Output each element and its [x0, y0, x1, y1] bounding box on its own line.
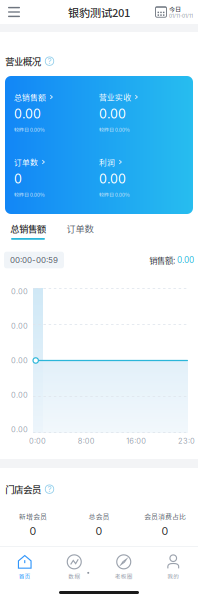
staticText: 数据	[68, 572, 80, 580]
staticText: 0	[161, 524, 168, 537]
staticText: 较昨日 0.00%	[14, 191, 45, 198]
staticText: 老板圈	[115, 572, 133, 580]
staticText: 8:00	[78, 436, 95, 445]
button[interactable]: 我的	[148, 548, 198, 588]
staticText: 新增会员	[19, 511, 47, 521]
staticText: 0.00	[11, 287, 28, 296]
staticText: 总销售额	[10, 222, 46, 235]
staticText: 订单数	[66, 222, 93, 235]
staticText: 营业实收	[99, 91, 131, 103]
staticText: ?	[47, 484, 51, 494]
button[interactable]: 订单数	[14, 158, 99, 197]
staticText: 利润	[99, 156, 115, 168]
button[interactable]: 利润	[99, 158, 184, 197]
staticText: 总会员	[88, 511, 109, 521]
staticText: 0.00	[177, 255, 194, 265]
staticText: 0	[29, 524, 36, 537]
staticText: 较昨日 0.00%	[14, 126, 45, 133]
staticText: 0	[95, 524, 102, 537]
staticText: ?	[47, 56, 51, 66]
staticText: 订单数	[14, 156, 38, 168]
staticText: 门店会员	[5, 482, 41, 496]
staticText: 0.00	[11, 356, 28, 365]
button[interactable]: 数据	[49, 548, 99, 588]
staticText: 23:0	[178, 436, 195, 445]
button[interactable]: 订单数	[62, 214, 98, 248]
staticText: 较昨日 0.00%	[99, 191, 130, 198]
button[interactable]: 总销售额	[14, 93, 99, 132]
staticText: 0.00	[11, 390, 28, 399]
button[interactable]: 今日	[155, 0, 198, 24]
staticText: 00:00-00:59	[10, 255, 58, 265]
staticText: 银豹测试201	[68, 4, 130, 20]
button[interactable]: 老板圈	[99, 548, 148, 588]
staticText: 0:00	[29, 436, 46, 445]
button[interactable]: 营业概况说明	[45, 57, 54, 66]
button[interactable]: 新增会员	[0, 512, 66, 546]
button[interactable]: 门店会员说明	[45, 485, 54, 494]
staticText: 首页	[19, 572, 31, 580]
staticText: 销售额:	[149, 254, 175, 266]
button[interactable]: 菜单	[0, 0, 30, 24]
staticText: 16:00	[126, 436, 146, 445]
staticText: 0.00	[14, 106, 41, 122]
staticText: 较昨日 0.00%	[99, 126, 130, 133]
button[interactable]: 总会员	[66, 512, 132, 546]
staticText: 总销售额	[14, 91, 46, 103]
staticText: 0.00	[11, 425, 28, 434]
button[interactable]: 总销售额	[5, 214, 51, 248]
button[interactable]: 会员消费占比	[132, 512, 198, 546]
staticText: 0.00	[11, 321, 28, 330]
staticText: 0	[14, 171, 22, 187]
staticText: 会员消费占比	[144, 511, 186, 521]
button[interactable]: 营业实收	[99, 93, 184, 132]
staticText: 今日	[169, 5, 181, 13]
button[interactable]: 首页	[0, 548, 49, 588]
staticText: 营业概况	[5, 54, 41, 68]
staticText: 01/11-01/11	[169, 13, 193, 19]
staticText: 0.00	[99, 171, 126, 187]
staticText: 0.00	[99, 106, 126, 122]
staticText: 我的	[167, 572, 179, 580]
